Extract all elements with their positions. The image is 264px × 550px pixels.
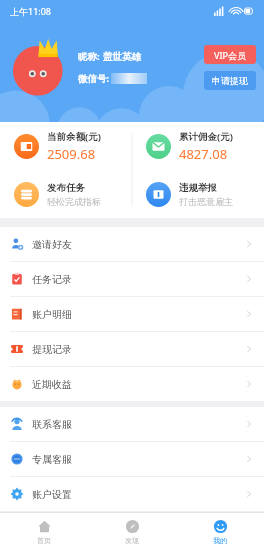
staticText: 我的 [213,536,227,545]
staticText: 2509.68 [47,145,96,163]
staticText: 申请提现 [212,75,248,86]
button[interactable]: 首页 [0,513,88,550]
staticText: 近期收益 [32,378,72,391]
button[interactable]: 专属客服 [0,442,264,476]
staticText: 账户设置 [32,488,72,501]
button[interactable]: 任务记录 [0,262,264,296]
staticText: 4827.08 [179,145,228,163]
staticText: 当前余额(元) [47,130,101,143]
staticText: 微信号: [78,72,110,85]
staticText: 发现 [125,536,139,545]
staticText: 联系客服 [32,418,72,431]
staticText: 账户明细 [32,308,72,321]
staticText: 首页 [37,536,51,545]
staticText: 提现记录 [32,343,72,356]
button[interactable]: 邀请好友 [0,227,264,261]
staticText: 盖世英雄 [103,51,141,63]
staticText: 上午11:08 [10,5,52,17]
button[interactable]: 发现 [88,513,176,550]
button[interactable]: 联系客服 [0,407,264,441]
staticText: 轻松完成指标 [47,196,101,207]
staticText: 违规举报 [179,182,217,194]
staticText: 邀请好友 [32,238,72,251]
button[interactable]: 提现记录 [0,332,264,366]
staticText: VIP会员 [214,49,246,61]
staticText: 专属客服 [32,453,72,466]
button[interactable]: 发布任务 [0,170,132,218]
button[interactable]: 违规举报 [132,170,264,218]
button[interactable]: 账户明细 [0,297,264,331]
button[interactable]: 当前余额(元) [0,122,132,170]
staticText: 累计佣金(元) [179,130,233,143]
button[interactable]: 累计佣金(元) [132,122,264,170]
staticText: 打击恶意雇主 [179,196,233,207]
button[interactable]: 申请提现 [204,71,256,90]
staticText: 昵称: [78,50,103,63]
button[interactable]: VIP会员 [204,45,256,64]
button[interactable]: 账户设置 [0,477,264,511]
staticText: 任务记录 [32,273,72,286]
button[interactable]: 近期收益 [0,367,264,401]
button[interactable]: 我的 [176,513,264,550]
staticText: 发布任务 [47,182,85,194]
